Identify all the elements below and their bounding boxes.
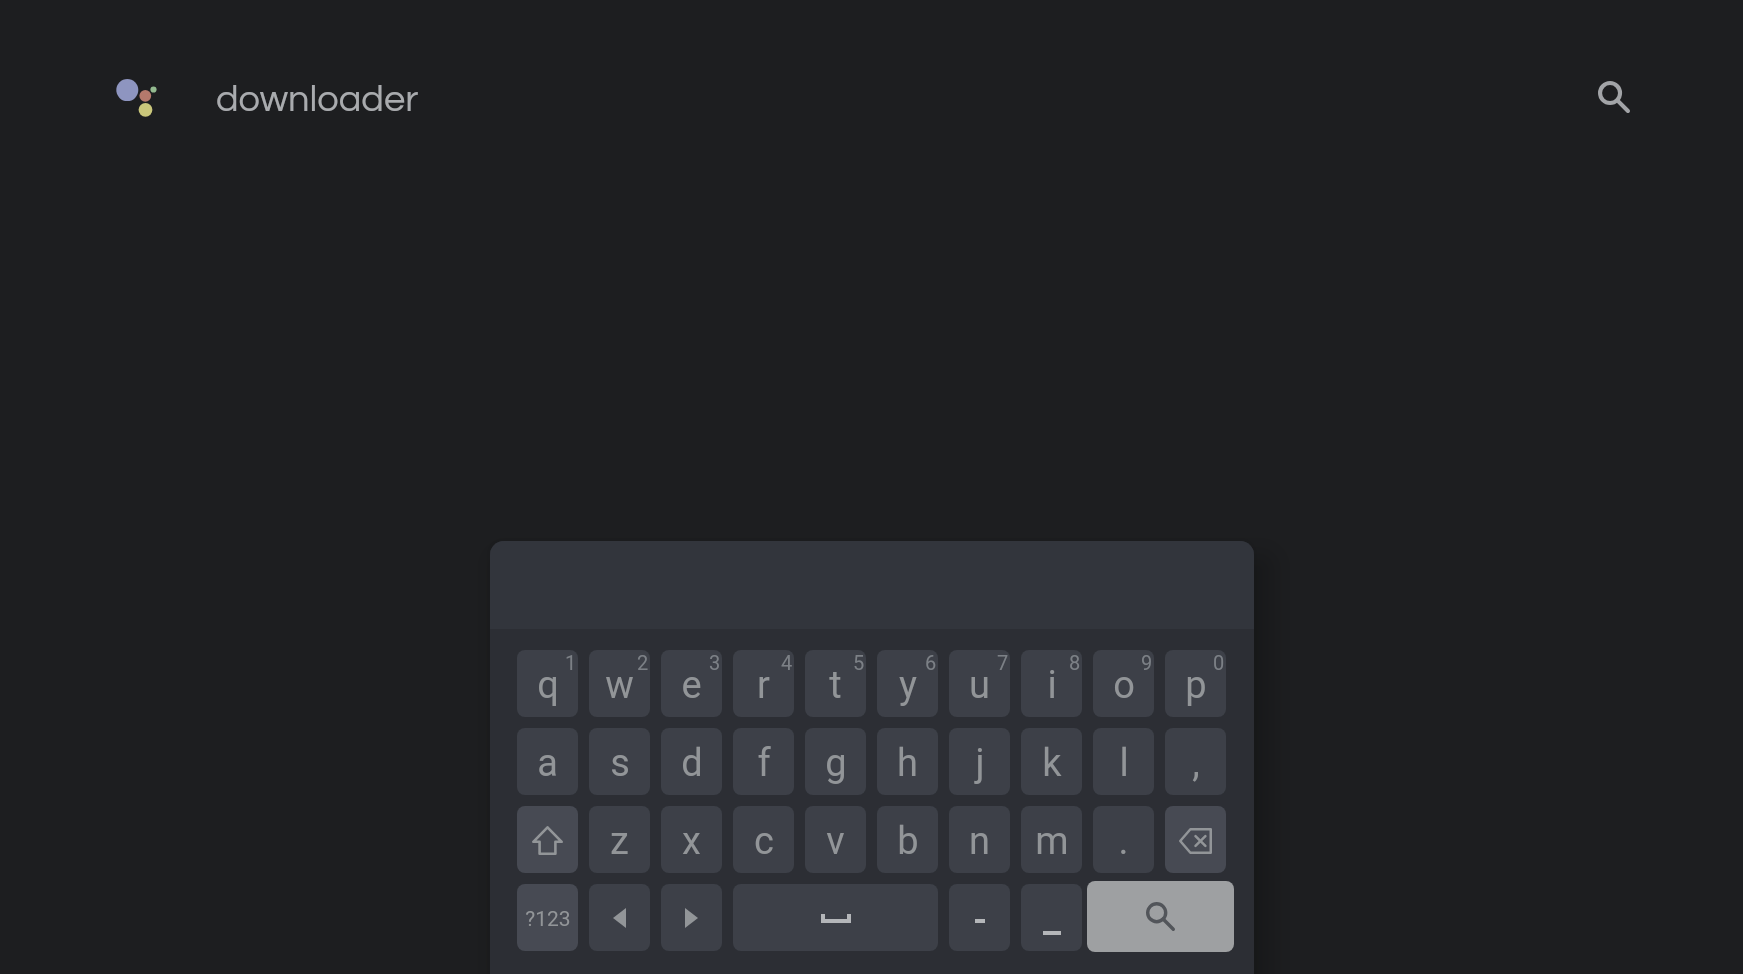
button[interactable]: q	[517, 650, 578, 717]
staticText: o	[1113, 663, 1135, 708]
button[interactable]: s	[589, 728, 650, 795]
button[interactable]: k	[1021, 728, 1082, 795]
button[interactable]: ?123	[517, 884, 578, 951]
staticText: x	[682, 819, 701, 864]
button[interactable]: i	[1021, 650, 1082, 717]
button[interactable]: Hyphen	[949, 884, 1010, 951]
button[interactable]: Backspace	[1165, 806, 1226, 873]
staticText: c	[754, 819, 774, 864]
staticText: y	[899, 663, 917, 708]
button[interactable]: c	[733, 806, 794, 873]
staticText: r	[757, 663, 770, 708]
staticText: 1	[565, 651, 577, 674]
button[interactable]: Space	[733, 884, 938, 951]
staticText: s	[610, 741, 630, 786]
button[interactable]: z	[589, 806, 650, 873]
button[interactable]: g	[805, 728, 866, 795]
staticText: i	[1047, 663, 1057, 708]
staticText: 3	[709, 651, 721, 674]
staticText: n	[969, 819, 990, 864]
staticText: e	[681, 663, 702, 708]
staticText: w	[605, 663, 634, 708]
button[interactable]: Underscore	[1021, 884, 1082, 951]
button[interactable]: downloader	[100, 56, 480, 128]
button[interactable]: d	[661, 728, 722, 795]
button[interactable]: y	[877, 650, 938, 717]
staticText: q	[537, 663, 559, 708]
staticText: 8	[1069, 651, 1081, 674]
button[interactable]: m	[1021, 806, 1082, 873]
staticText: v	[826, 819, 845, 864]
staticText: .	[1118, 819, 1129, 864]
button[interactable]: n	[949, 806, 1010, 873]
staticText: p	[1185, 663, 1207, 708]
button[interactable]: Search	[1087, 881, 1234, 952]
staticText: 2	[637, 651, 649, 674]
staticText: downloader	[216, 80, 419, 119]
button[interactable]: l	[1093, 728, 1154, 795]
staticText: k	[1042, 741, 1062, 786]
button[interactable]: ,	[1165, 728, 1226, 795]
button[interactable]: h	[877, 728, 938, 795]
button[interactable]: u	[949, 650, 1010, 717]
button[interactable]: e	[661, 650, 722, 717]
staticText: a	[537, 741, 558, 786]
button[interactable]: Move cursor right	[661, 884, 722, 951]
staticText: l	[1119, 741, 1129, 786]
staticText: ?123	[525, 907, 571, 932]
staticText: 5	[853, 651, 865, 674]
button[interactable]: w	[589, 650, 650, 717]
button[interactable]: r	[733, 650, 794, 717]
staticText: h	[897, 741, 918, 786]
staticText: d	[681, 741, 703, 786]
button[interactable]: x	[661, 806, 722, 873]
button[interactable]: Search	[1581, 64, 1647, 130]
button[interactable]: j	[949, 728, 1010, 795]
button[interactable]: a	[517, 728, 578, 795]
button[interactable]: .	[1093, 806, 1154, 873]
button[interactable]: Move cursor left	[589, 884, 650, 951]
button[interactable]: o	[1093, 650, 1154, 717]
staticText: 7	[997, 651, 1009, 674]
staticText: t	[829, 663, 842, 708]
staticText: m	[1035, 819, 1069, 864]
button[interactable]: f	[733, 728, 794, 795]
staticText: f	[757, 741, 771, 786]
staticText: 9	[1141, 651, 1153, 674]
button[interactable]: b	[877, 806, 938, 873]
staticText: b	[897, 819, 919, 864]
staticText: 0	[1213, 651, 1225, 674]
staticText: ,	[1192, 741, 1200, 786]
staticText: u	[969, 663, 990, 708]
button[interactable]: v	[805, 806, 866, 873]
staticText: 6	[925, 651, 937, 674]
staticText: j	[975, 741, 985, 786]
button[interactable]: p	[1165, 650, 1226, 717]
button[interactable]: Shift	[517, 806, 578, 873]
staticText: g	[825, 741, 847, 786]
staticText: 4	[781, 651, 793, 674]
button[interactable]: t	[805, 650, 866, 717]
staticText: z	[610, 819, 629, 864]
